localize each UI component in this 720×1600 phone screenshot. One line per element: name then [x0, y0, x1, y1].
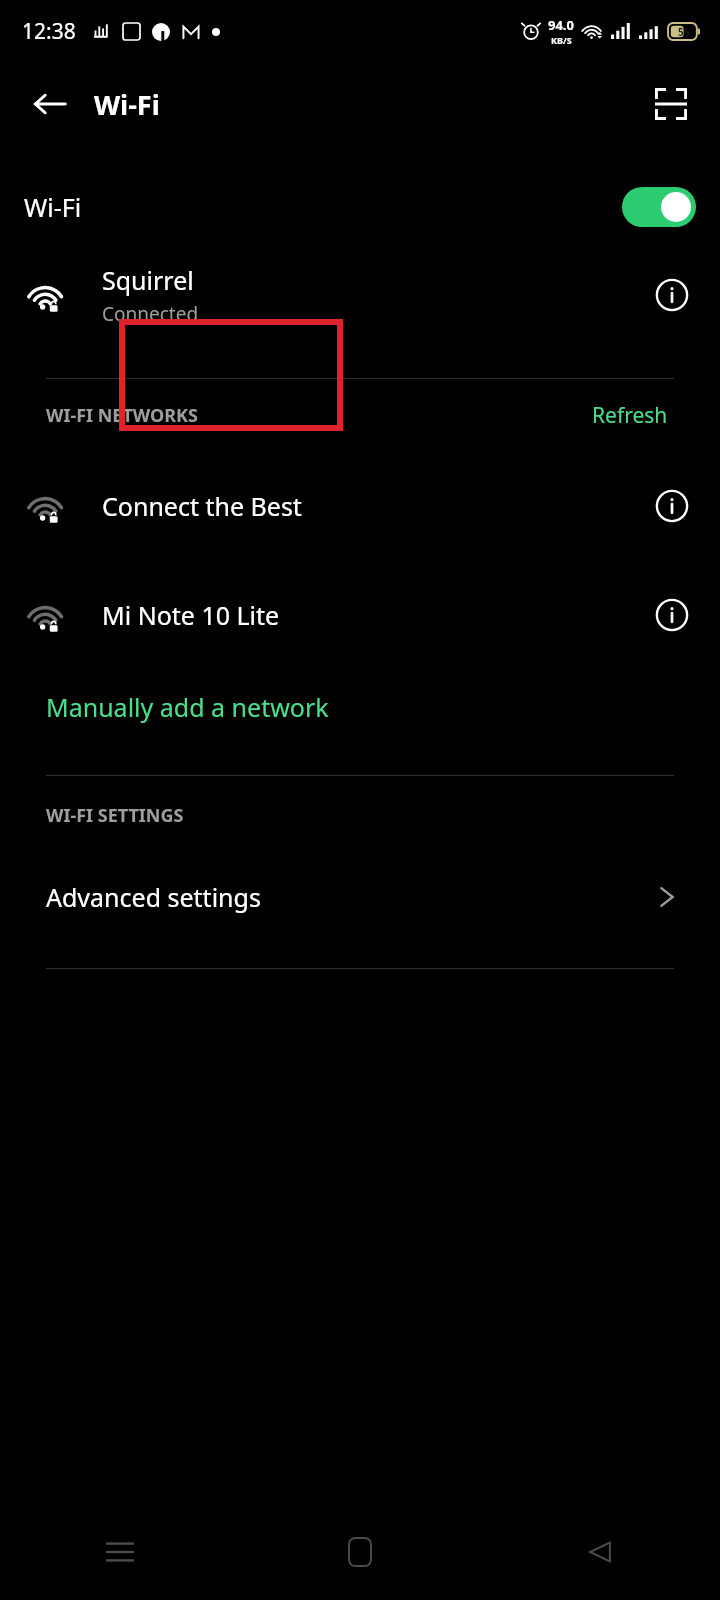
button[interactable]: Back — [24, 78, 76, 130]
button[interactable]: Recent apps — [0, 1504, 240, 1600]
button[interactable]: Connect the Best — [0, 451, 720, 560]
button[interactable]: Mi Note 10 Lite — [0, 560, 720, 669]
button[interactable]: Scan QR code — [644, 77, 698, 131]
staticText: 94.0 — [548, 16, 574, 34]
staticText: Wi-Fi — [94, 86, 160, 123]
button[interactable]: Wi-Fi — [0, 174, 720, 240]
staticText: WI-FI SETTINGS — [46, 803, 184, 828]
staticText: Manually add a network — [46, 690, 329, 724]
staticText: Advanced settings — [46, 880, 261, 914]
button[interactable]: Squirrel — [0, 240, 720, 350]
button[interactable]: Network details for Connect the Best — [646, 480, 698, 532]
staticText: Squirrel — [102, 263, 194, 297]
staticText: WI-FI NETWORKS — [46, 403, 198, 428]
staticText: 12:38 — [22, 17, 76, 46]
button[interactable]: Back — [480, 1504, 720, 1600]
button[interactable]: Network details for Squirrel — [646, 269, 698, 321]
staticText: Mi Note 10 Lite — [102, 598, 280, 632]
staticText: Wi-Fi — [24, 190, 82, 224]
button[interactable]: Advanced settings — [0, 854, 720, 940]
staticText: Refresh — [592, 401, 668, 430]
button[interactable]: Home — [240, 1504, 480, 1600]
button[interactable]: Network details for Mi Note 10 Lite — [646, 589, 698, 641]
staticText: Connected — [102, 301, 199, 327]
button[interactable]: Refresh — [586, 395, 674, 436]
staticText: Connect the Best — [102, 489, 302, 523]
staticText: KB/S — [551, 34, 572, 46]
staticText: 55 — [678, 25, 690, 39]
button[interactable]: Manually add a network — [0, 669, 720, 745]
